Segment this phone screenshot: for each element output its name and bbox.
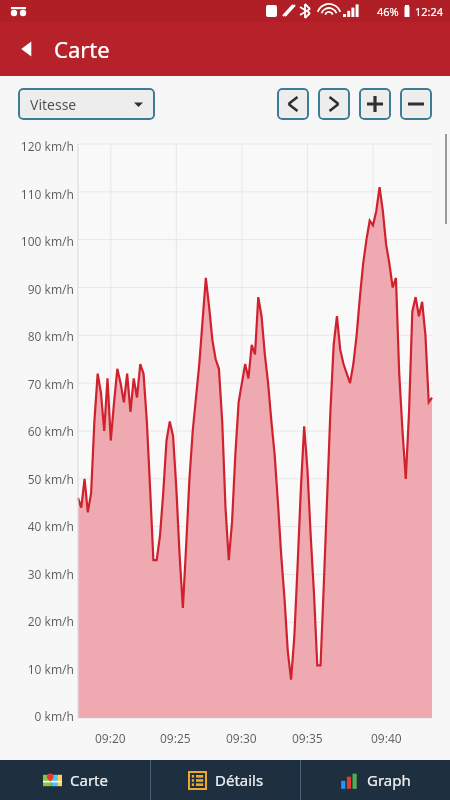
staticText: 110 km/h (20, 186, 74, 202)
staticText: Carte (54, 34, 110, 64)
staticText: 09:20 (95, 730, 126, 746)
staticText: 09:40 (371, 730, 402, 746)
staticText: 20 km/h (27, 613, 74, 629)
staticText: 09:30 (226, 730, 257, 746)
staticText: 12:24 (415, 4, 444, 19)
button[interactable]: Graph (301, 760, 450, 800)
staticText: 60 km/h (27, 423, 74, 439)
staticText: 40 km/h (27, 518, 74, 534)
staticText: 50 km/h (27, 471, 74, 487)
staticText: 120 km/h (20, 138, 74, 154)
button[interactable]: Back (0, 22, 54, 76)
button[interactable]: Détails (151, 760, 300, 800)
staticText: 46% (377, 4, 399, 19)
staticText: Graph (367, 770, 411, 790)
button[interactable]: Previous (277, 88, 309, 120)
staticText: 30 km/h (27, 566, 74, 582)
staticText: Vitesse (30, 95, 77, 114)
staticText: Détails (215, 770, 264, 790)
button[interactable]: Zoom in (359, 88, 391, 120)
staticText: 09:25 (160, 730, 191, 746)
staticText: 90 km/h (27, 281, 74, 297)
staticText: Carte (70, 770, 108, 790)
staticText: 70 km/h (27, 376, 74, 392)
staticText: 0 km/h (34, 708, 74, 724)
staticText: 09:35 (292, 730, 323, 746)
button[interactable]: Carte (0, 760, 150, 800)
button[interactable]: Next (318, 88, 350, 120)
staticText: 10 km/h (27, 661, 74, 677)
staticText: 80 km/h (27, 328, 74, 344)
button[interactable]: Vitesse (18, 88, 155, 120)
button[interactable]: Zoom out (400, 88, 432, 120)
staticText: 100 km/h (20, 233, 74, 249)
